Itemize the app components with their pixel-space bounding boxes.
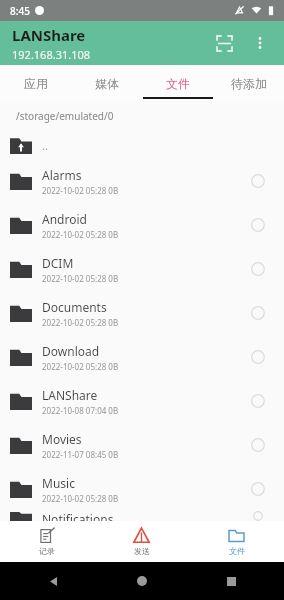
staticText: 2022-10-02 05:28 0B [42,493,119,504]
button[interactable]: Select Music [246,477,270,501]
staticText: Documents [42,299,107,315]
button[interactable]: Notifications [0,511,284,521]
button[interactable]: 应用 [0,65,71,101]
staticText: Alarms [42,167,82,183]
staticText: 2022-10-02 05:28 0B [42,229,119,240]
staticText: .. [42,138,48,153]
staticText: 8:45 [10,4,30,18]
button[interactable]: 发送 [94,521,189,562]
staticText: Notifications [42,511,114,521]
staticText: 记录 [39,546,55,556]
button[interactable]: Download [0,335,284,379]
staticText: /storage/emulated/0 [16,109,114,123]
staticText: 应用 [24,76,48,91]
staticText: 2022-10-02 05:28 0B [42,361,119,372]
staticText: 2022-10-02 05:28 0B [42,185,119,196]
staticText: 2022-11-07 08:45 0B [42,449,119,460]
button[interactable]: LANShare [0,379,284,423]
button[interactable]: Select Android [246,213,270,237]
button[interactable]: Select Documents [246,301,270,325]
staticText: LANShare [42,387,98,403]
button[interactable]: 文件 [142,65,213,101]
staticText: 媒体 [95,76,119,91]
staticText: DCIM [42,255,74,271]
staticText: 发送 [134,546,150,556]
button[interactable]: 文件 [189,521,284,562]
staticText: 2022-10-02 05:28 0B [42,317,119,328]
staticText: Music [42,475,75,491]
button[interactable]: 待添加 [213,65,284,101]
staticText: LANShare [12,25,86,45]
button[interactable]: 记录 [0,521,94,562]
staticText: 文件 [166,76,190,91]
staticText: 文件 [229,546,245,556]
staticText: Download [42,343,100,359]
button[interactable]: Recent apps [218,568,244,594]
staticText: Android [42,211,87,227]
button[interactable]: More options [242,25,278,61]
button[interactable]: Select Movies [246,433,270,457]
button[interactable]: .. [0,131,284,159]
button[interactable]: 媒体 [71,65,142,101]
staticText: 待添加 [231,76,267,91]
button[interactable]: Alarms [0,159,284,203]
button[interactable]: Select LANShare [246,389,270,413]
button[interactable]: Movies [0,423,284,467]
button[interactable]: Home [129,568,155,594]
staticText: Movies [42,431,82,447]
staticText: 2022-10-02 05:28 0B [42,273,119,284]
button[interactable]: Select Notifications [246,511,270,521]
button[interactable]: Select Download [246,345,270,369]
button[interactable]: Android [0,203,284,247]
button[interactable]: Documents [0,291,284,335]
button[interactable]: Select Alarms [246,169,270,193]
button[interactable]: Select DCIM [246,257,270,281]
button[interactable]: Scan QR code [206,25,242,61]
button[interactable]: DCIM [0,247,284,291]
button[interactable]: Back [40,568,66,594]
staticText: 2022-10-08 07:04 0B [42,405,119,416]
button[interactable]: Music [0,467,284,511]
staticText: 192.168.31.108 [12,47,91,62]
